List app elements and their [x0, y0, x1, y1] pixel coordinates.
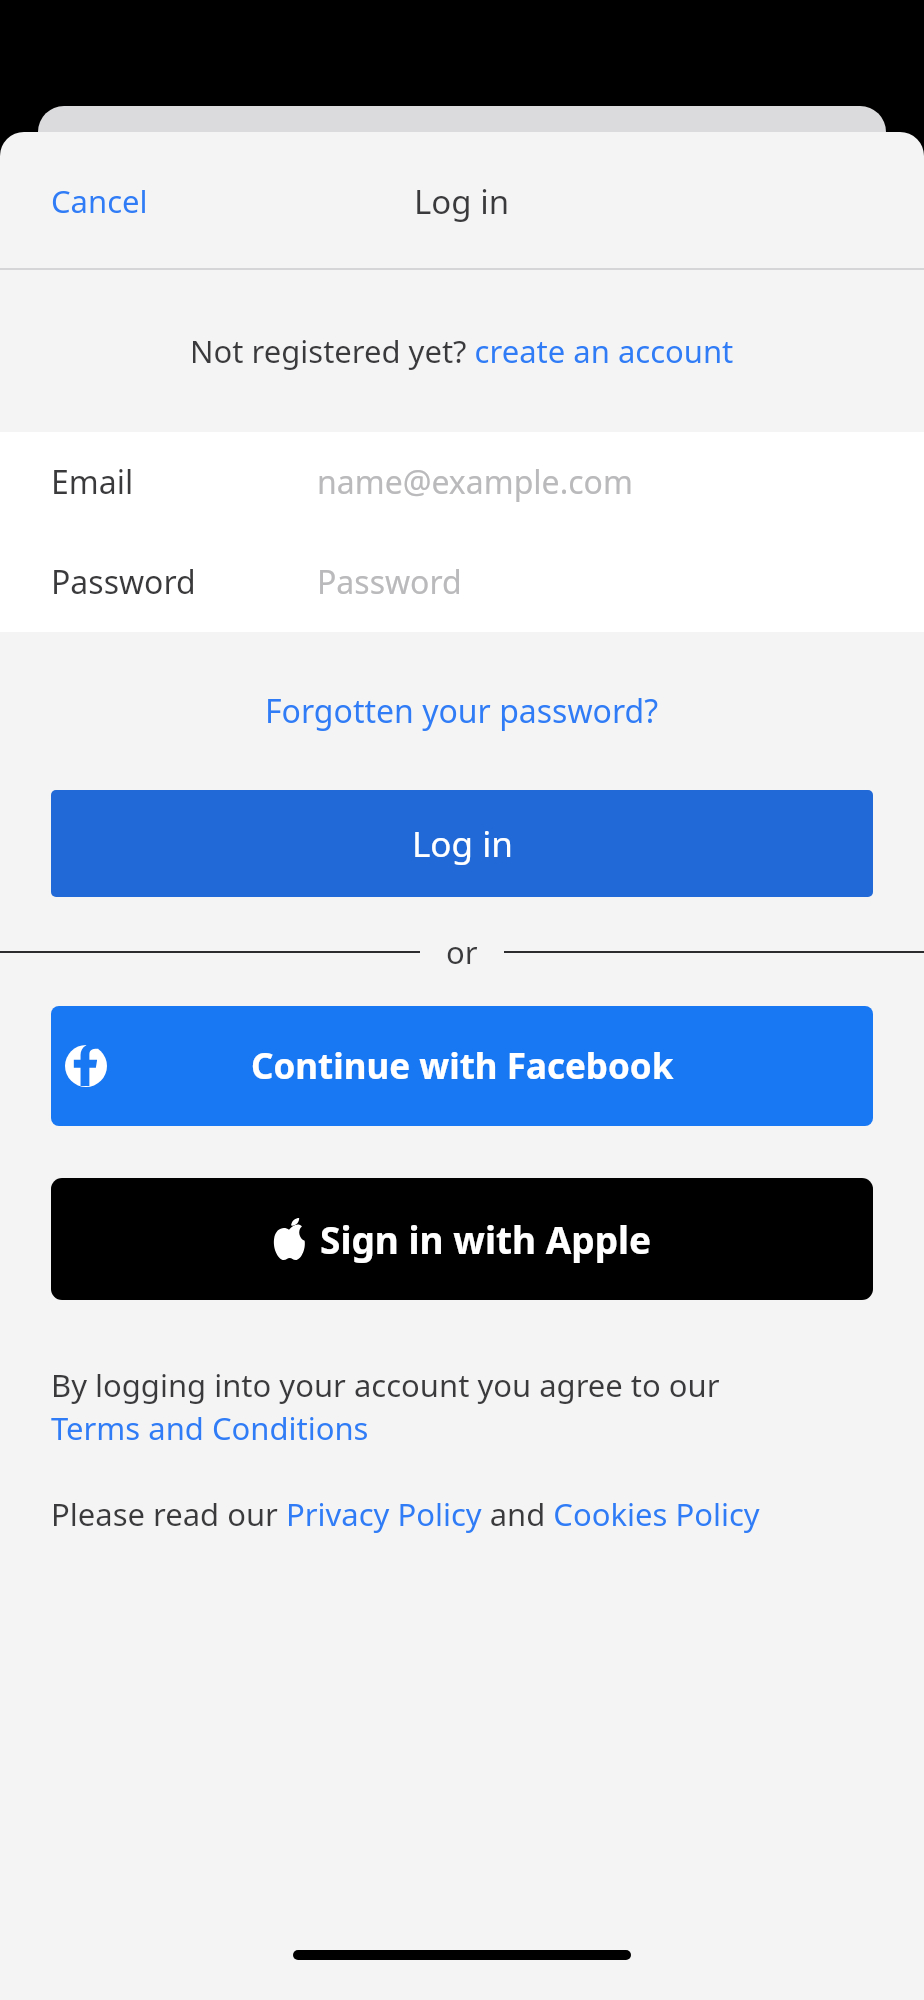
staticText: Sign in with Apple [320, 1214, 652, 1264]
button[interactable]: Email [0, 432, 924, 532]
staticText: Log in [414, 179, 510, 224]
other: Facebook [65, 1045, 107, 1087]
button[interactable]: By logging into your account you agree t… [51, 1364, 720, 1449]
button[interactable]: Log in [51, 790, 873, 897]
button[interactable]: Not registered yet? create an account [174, 316, 750, 386]
button[interactable]: Sign in with Apple [51, 1178, 873, 1300]
staticText: Password [317, 560, 462, 604]
staticText: Continue with Facebook [251, 1042, 674, 1090]
staticText: Cancel [51, 180, 148, 222]
staticText: Not registered yet? create an account [190, 330, 734, 372]
staticText: Log in [412, 820, 513, 868]
button[interactable]: Facebook [51, 1006, 873, 1126]
button[interactable]: Please read our Privacy Policy and Cooki… [51, 1493, 760, 1535]
staticText: or [446, 931, 478, 973]
staticText: name@example.com [317, 460, 633, 504]
staticText: Password [51, 560, 196, 604]
button[interactable]: Forgotten your password? [249, 675, 675, 747]
staticText: Forgotten your password? [265, 689, 659, 733]
staticText: Email [51, 460, 134, 504]
button[interactable]: Cancel [0, 164, 182, 238]
button[interactable]: Password [0, 532, 924, 632]
